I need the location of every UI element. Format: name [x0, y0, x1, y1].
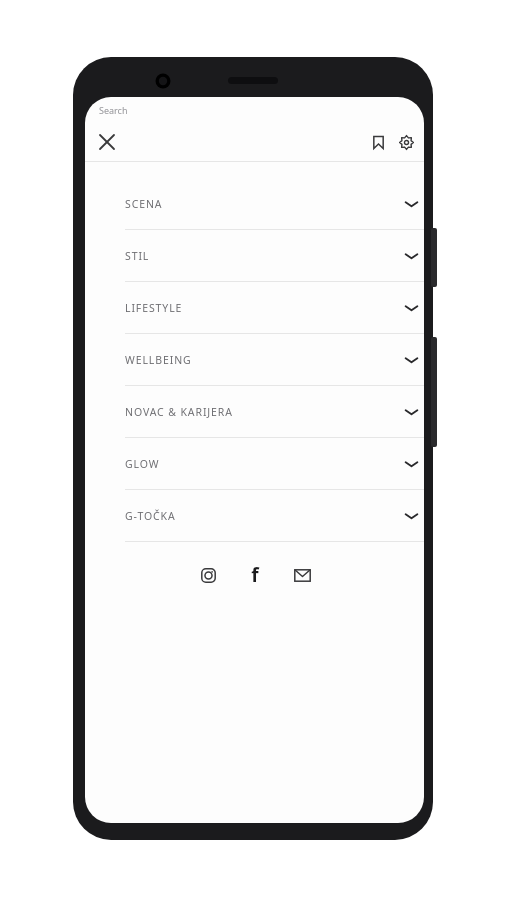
button[interactable]: GLOW	[85, 438, 424, 489]
button[interactable]: LIFESTYLE	[85, 282, 424, 333]
staticText: SCENA	[125, 197, 405, 211]
staticText: LIFESTYLE	[125, 301, 405, 315]
button[interactable]: Instagram	[189, 556, 227, 594]
button[interactable]: SCENA	[85, 178, 424, 229]
button[interactable]: NOVAC & KARIJERA	[85, 386, 424, 437]
staticText: Search	[99, 104, 128, 116]
staticText: f	[251, 562, 259, 588]
staticText: GLOW	[125, 457, 405, 471]
button[interactable]: Email	[283, 556, 321, 594]
staticText: NOVAC & KARIJERA	[125, 405, 405, 419]
button[interactable]: WELLBEING	[85, 334, 424, 385]
button[interactable]: Bookmarks	[361, 125, 395, 159]
button[interactable]: Close	[87, 122, 127, 161]
staticText: G-TOČKA	[125, 509, 405, 523]
button[interactable]: Settings	[389, 125, 423, 159]
button[interactable]: STIL	[85, 230, 424, 281]
button[interactable]: G-TOČKA	[85, 490, 424, 541]
staticText: WELLBEING	[125, 353, 405, 367]
staticText: STIL	[125, 249, 405, 263]
button[interactable]: Facebook	[236, 556, 274, 594]
